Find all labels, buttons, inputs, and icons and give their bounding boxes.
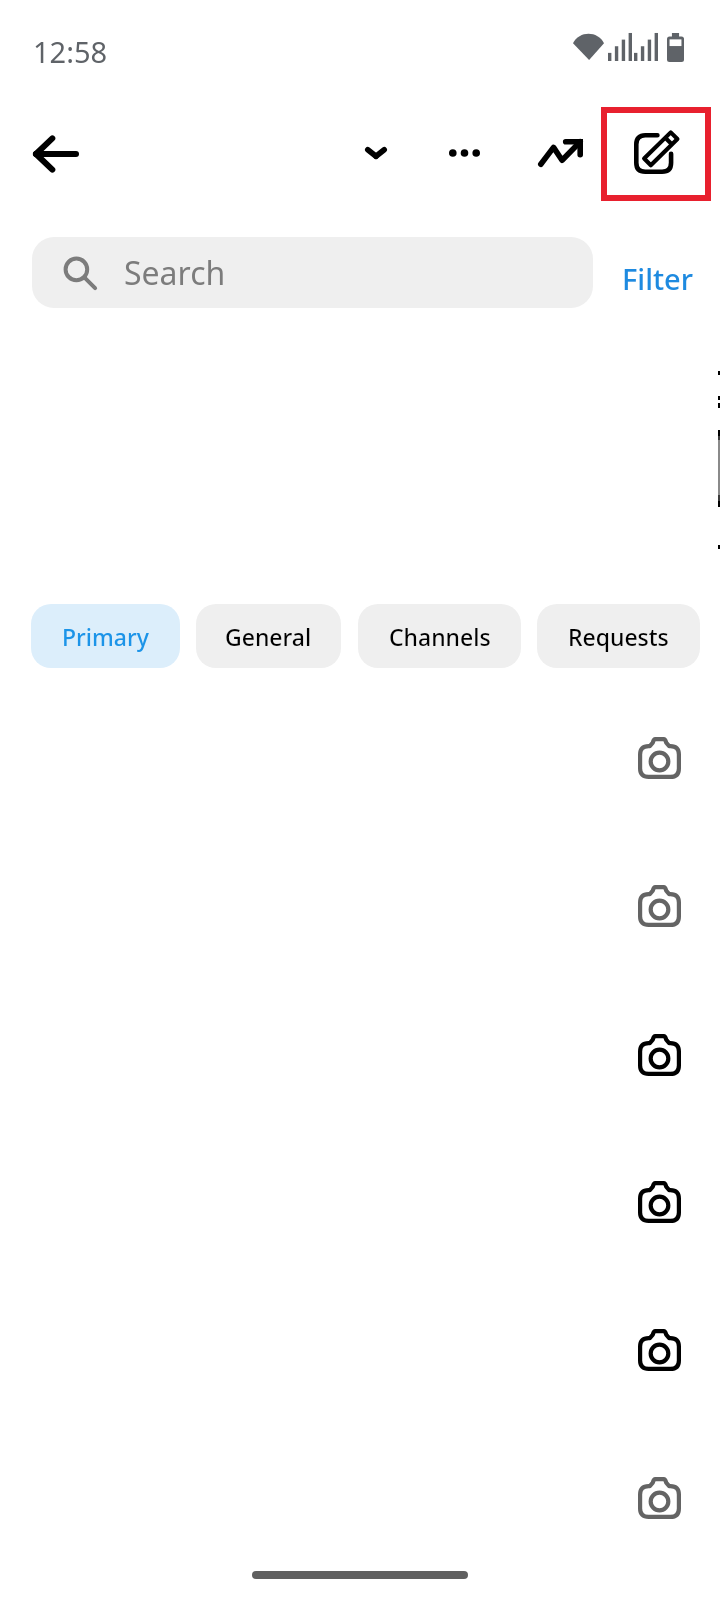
- button[interactable]: Back: [12, 110, 100, 198]
- button[interactable]: Conversation 5: [0, 1276, 720, 1424]
- staticText: Search: [124, 251, 226, 295]
- staticText: Channels: [389, 621, 491, 652]
- staticText: General: [225, 621, 312, 652]
- button[interactable]: Trending: [524, 117, 596, 189]
- button[interactable]: Search: [32, 237, 593, 308]
- button[interactable]: Send photo: [638, 1477, 681, 1519]
- button[interactable]: Send photo: [638, 1034, 681, 1076]
- button[interactable]: Expand: [340, 117, 412, 189]
- button[interactable]: Channels: [358, 604, 521, 668]
- button[interactable]: Conversation 6: [0, 1424, 720, 1572]
- button[interactable]: New message: [601, 107, 711, 201]
- staticText: 12:58: [33, 32, 108, 71]
- staticText: Filter: [622, 259, 693, 298]
- button[interactable]: Send photo: [638, 737, 681, 779]
- button[interactable]: Send photo: [638, 1181, 681, 1223]
- button[interactable]: Conversation 4: [0, 1128, 720, 1276]
- button[interactable]: Conversation 3: [0, 981, 720, 1129]
- button[interactable]: Conversation 1: [0, 684, 720, 832]
- button[interactable]: Conversation 2: [0, 832, 720, 980]
- staticText: Primary: [62, 621, 149, 652]
- button[interactable]: Send photo: [638, 885, 681, 927]
- button[interactable]: Requests: [537, 604, 700, 668]
- button[interactable]: Send photo: [638, 1329, 681, 1371]
- button[interactable]: More options: [428, 117, 500, 189]
- button[interactable]: General: [196, 604, 341, 668]
- button[interactable]: Primary: [31, 604, 180, 668]
- staticText: Requests: [568, 621, 669, 652]
- button[interactable]: Filter: [612, 252, 702, 304]
